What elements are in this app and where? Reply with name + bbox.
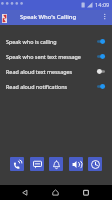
staticText: Speak Who's Calling [20,13,77,21]
staticText: Speak who sent text message [6,53,81,60]
staticText: 14:09 [95,1,110,9]
button[interactable]: Read aloud notifications [0,79,112,94]
button[interactable]: Schedule [88,157,102,171]
button[interactable]: More options [100,12,112,24]
staticText: Read aloud notifications [6,83,68,90]
button[interactable]: Speak who sent text message [0,49,112,64]
button[interactable]: Call announcements [10,157,24,171]
button[interactable]: Read aloud text messages [0,64,112,79]
other: App icon [2,14,7,23]
staticText: Read aloud text messages [6,68,73,75]
button[interactable]: Speak who is calling [0,34,112,49]
staticText: Speak who is calling [6,38,57,45]
button[interactable]: Notifications [49,157,63,171]
button[interactable]: Messages [30,157,44,171]
button[interactable]: Volume [69,157,83,171]
